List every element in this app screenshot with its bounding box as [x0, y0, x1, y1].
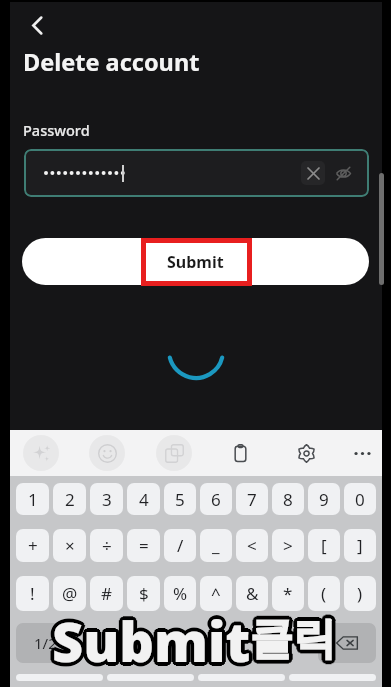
staticText: Submit	[49, 603, 248, 677]
staticText: Submit	[56, 604, 255, 678]
button[interactable]: Submit	[22, 238, 369, 285]
button[interactable]: 8	[272, 483, 304, 515]
staticText: ^	[211, 582, 221, 605]
button[interactable]: Emoji	[89, 435, 125, 471]
button[interactable]: 4	[127, 483, 160, 515]
staticText: Submit	[50, 601, 249, 675]
button[interactable]: ÷	[90, 529, 123, 562]
staticText: 클릭	[248, 611, 334, 665]
staticText: =	[139, 534, 149, 557]
button[interactable]: Stickers	[156, 435, 192, 471]
staticText: Submit	[50, 607, 249, 681]
button[interactable]: _	[200, 529, 232, 562]
button[interactable]: ]	[344, 529, 376, 562]
staticText: 클릭	[250, 611, 336, 665]
button[interactable]: $	[127, 576, 160, 611]
staticText: 클릭	[251, 614, 337, 668]
button[interactable]: +	[16, 529, 49, 562]
staticText: Submit	[50, 605, 249, 679]
staticText: Submit	[55, 604, 254, 678]
button[interactable]: =	[127, 529, 160, 562]
button[interactable]: ^	[200, 576, 232, 611]
staticText: Submit	[52, 606, 251, 680]
staticText: 클릭	[250, 613, 336, 667]
staticText: 클릭	[248, 610, 334, 664]
staticText: Submit	[51, 604, 250, 678]
staticText: Submit	[51, 603, 250, 677]
staticText: 클릭	[247, 611, 333, 665]
staticText: Submit	[54, 607, 253, 681]
staticText: 클릭	[249, 612, 335, 666]
staticText: 0	[355, 488, 365, 511]
button[interactable]	[289, 674, 376, 681]
staticText: 클릭	[253, 611, 339, 665]
staticText: 클릭	[252, 609, 338, 663]
staticText: 클릭	[252, 610, 338, 664]
button[interactable]: 1/2	[16, 623, 74, 663]
staticText: 클릭	[247, 612, 333, 666]
button[interactable]: <	[236, 529, 268, 562]
button[interactable]: Clear text	[301, 161, 325, 185]
button[interactable]: /	[164, 529, 196, 562]
staticText: 6	[211, 488, 221, 511]
button[interactable]: *	[272, 576, 304, 611]
staticText: Submit	[55, 603, 254, 677]
staticText: +	[28, 534, 38, 557]
staticText: Submit	[49, 604, 248, 678]
staticText: Submit	[50, 602, 249, 676]
staticText: Submit	[55, 606, 254, 680]
staticText: 클릭	[251, 611, 337, 665]
staticText: 클릭	[249, 615, 335, 669]
button[interactable]: Back	[20, 8, 54, 42]
staticText: 클릭	[251, 610, 337, 664]
staticText: ×	[65, 534, 75, 557]
button[interactable]: 7	[236, 483, 268, 515]
button[interactable]: Clipboard	[222, 435, 258, 471]
button[interactable]: %	[164, 576, 196, 611]
button[interactable]	[16, 674, 103, 681]
button[interactable]: Clear text	[24, 149, 369, 197]
button[interactable]: 2	[53, 483, 86, 515]
button[interactable]: #	[90, 576, 123, 611]
staticText: 클릭	[247, 614, 333, 668]
button[interactable]: ×	[53, 529, 86, 562]
button[interactable]: 9	[308, 483, 340, 515]
button[interactable]: Backspace	[318, 623, 376, 663]
staticText: 4	[139, 488, 149, 511]
staticText: 클릭	[253, 614, 339, 668]
button[interactable]: More options	[344, 435, 380, 471]
button[interactable]: )	[344, 576, 376, 611]
staticText: Submit	[50, 603, 249, 677]
staticText: 클릭	[253, 613, 339, 667]
staticText: 클릭	[249, 609, 335, 663]
staticText: Submit	[53, 604, 252, 678]
button[interactable]	[107, 674, 194, 681]
button[interactable]: Settings	[288, 435, 324, 471]
staticText: 클릭	[250, 612, 336, 666]
staticText: 클릭	[250, 610, 336, 664]
button[interactable]: (	[308, 576, 340, 611]
staticText: Password	[23, 120, 90, 140]
staticText: Submit	[52, 600, 251, 674]
button[interactable]: !	[16, 576, 49, 611]
button[interactable]: Show password	[331, 161, 355, 185]
button[interactable]: @	[53, 576, 86, 611]
staticText: 클릭	[252, 611, 338, 665]
staticText: 1	[28, 488, 38, 511]
button[interactable]: >	[272, 529, 304, 562]
button[interactable]: &	[236, 576, 268, 611]
staticText: Submit	[54, 604, 253, 678]
button[interactable]: 0	[344, 483, 376, 515]
staticText: 클릭	[249, 614, 335, 668]
button[interactable]: 5	[164, 483, 196, 515]
staticText: Submit	[52, 608, 251, 682]
staticText: (	[321, 582, 327, 605]
button[interactable]: 1	[16, 483, 49, 515]
button[interactable]	[198, 674, 285, 681]
button[interactable]: [	[308, 529, 340, 562]
button[interactable]: 3	[90, 483, 123, 515]
button[interactable]: Assistant	[23, 435, 59, 471]
staticText: Submit	[51, 605, 250, 679]
button[interactable]: 6	[200, 483, 232, 515]
staticText: @	[62, 582, 78, 605]
